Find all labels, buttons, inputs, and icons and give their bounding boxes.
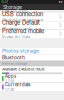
staticText: 9:41: [1, 0, 7, 4]
staticText: USB connection: [2, 11, 43, 18]
staticText: Photos storage: [2, 48, 39, 54]
staticText: USB connection: [2, 9, 28, 14]
button[interactable]: Current data: [0, 83, 64, 91]
staticText: Storage: [3, 4, 22, 10]
staticText: 2.1 GB: [5, 79, 14, 83]
button[interactable]: Bluetooth: [0, 54, 64, 60]
staticText: Prefer for data: [2, 35, 30, 40]
button[interactable]: Photos storage: [0, 48, 64, 54]
staticText: Available 3.40GB of 16GB: [2, 67, 44, 71]
staticText: Preferred mobile: [2, 28, 44, 35]
button[interactable]: Apps: [0, 74, 64, 82]
staticText: Current data: [5, 82, 30, 87]
button[interactable]: Charge Default: [0, 21, 64, 29]
staticText: Charging this device: [2, 18, 43, 23]
button[interactable]: Preferred mobile: [0, 30, 64, 38]
staticText: Apps: [5, 74, 16, 79]
staticText: 1.2 GB: [5, 88, 14, 92]
button[interactable]: USB connection: [0, 13, 64, 21]
staticText: Charging only: [2, 27, 32, 32]
staticText: Bluetooth: [2, 55, 25, 60]
staticText: Charge Default: [2, 19, 40, 26]
staticText: Internal storage: [2, 61, 27, 66]
